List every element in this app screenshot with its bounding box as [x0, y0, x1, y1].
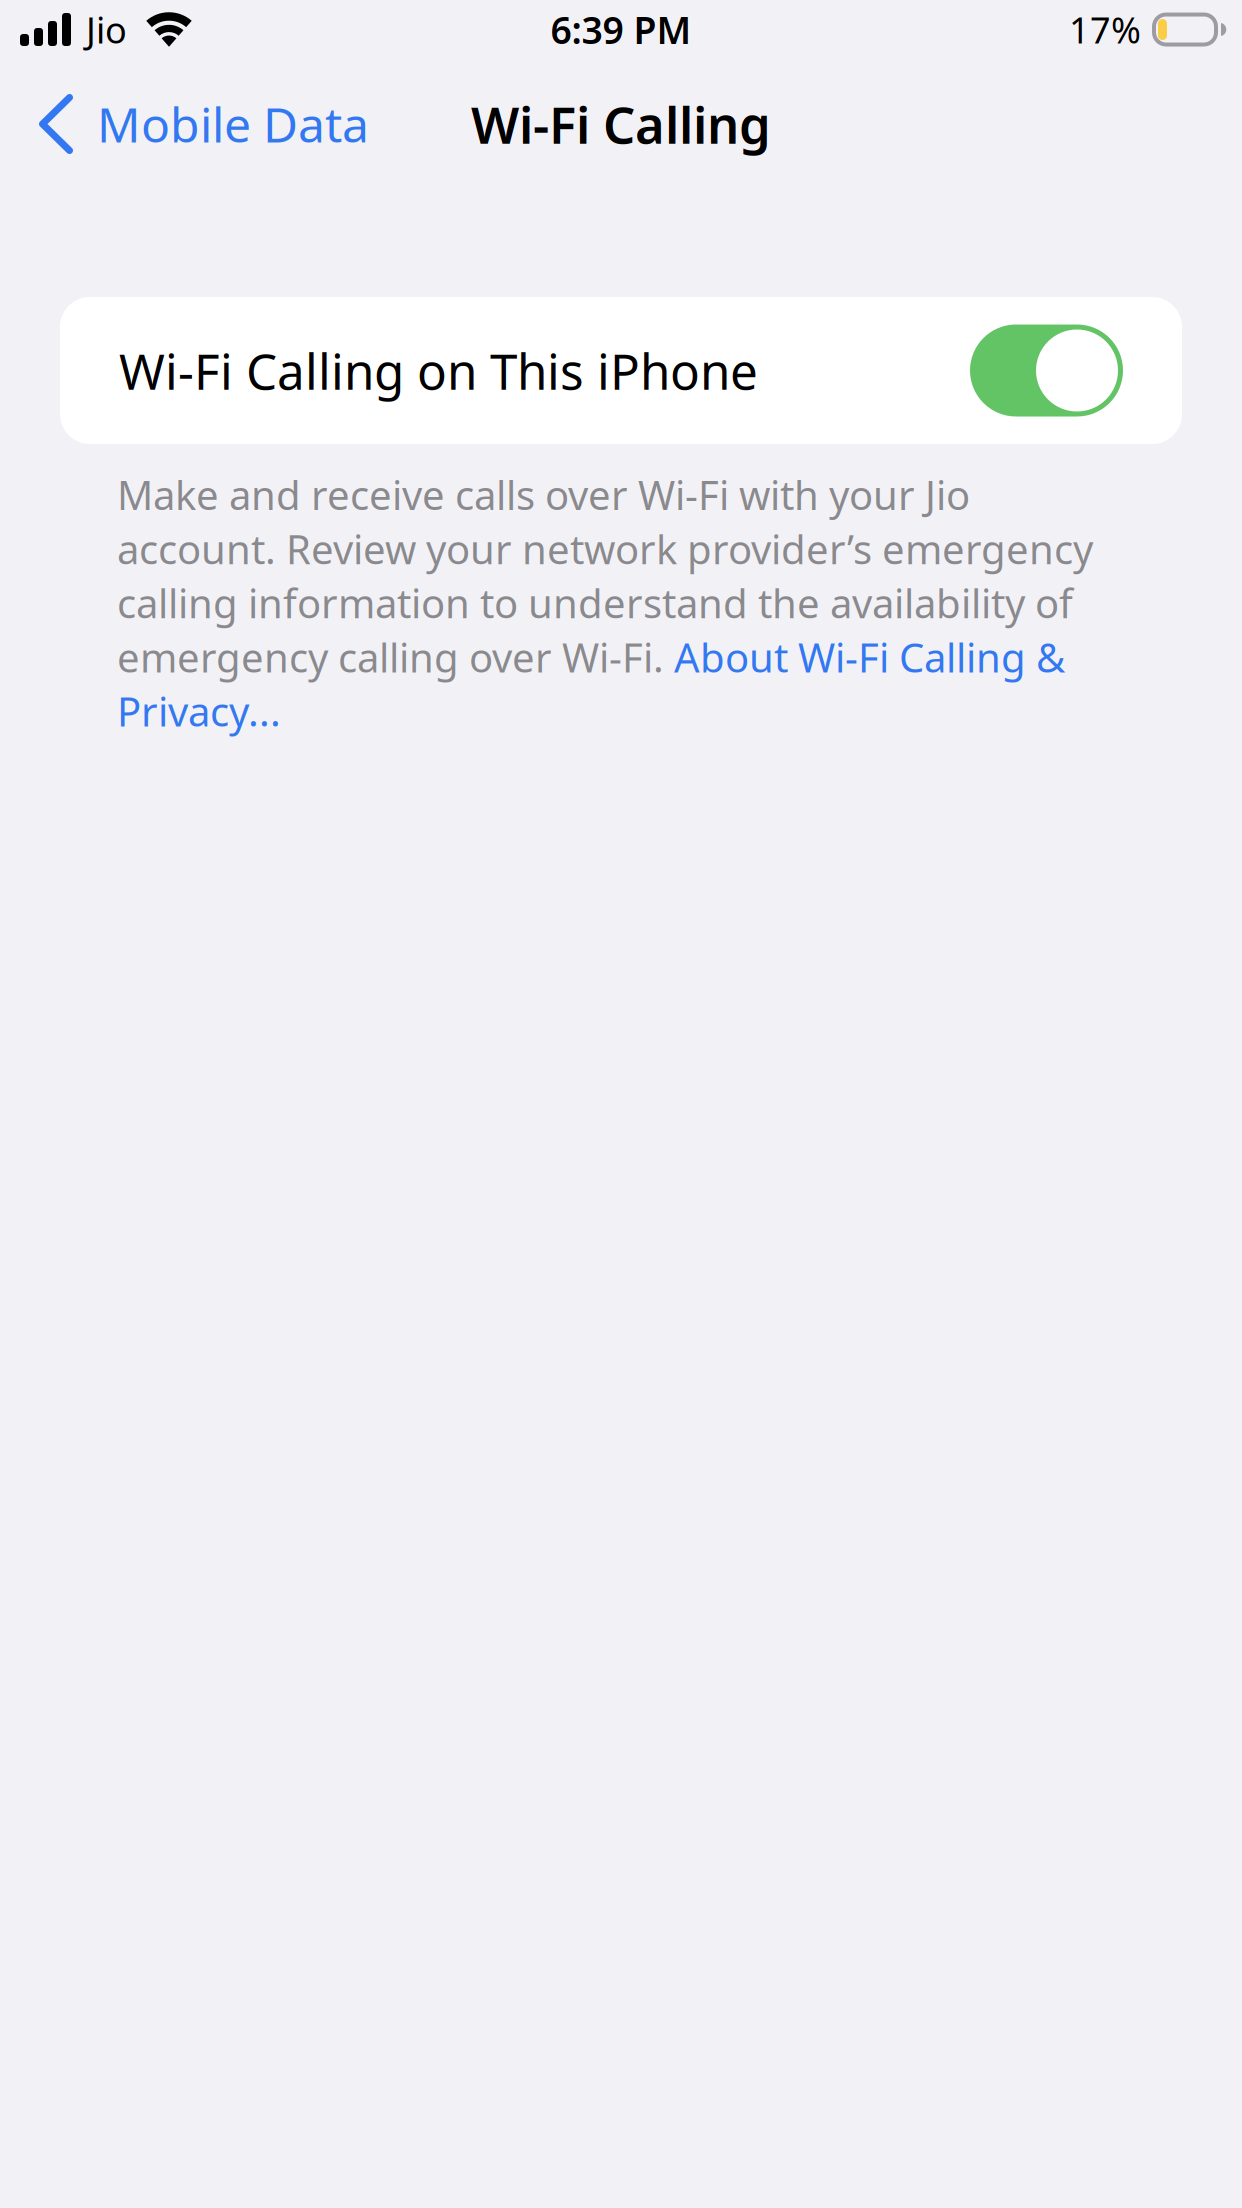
staticText: Make and receive calls over Wi-Fi with y… — [117, 468, 970, 521]
staticText: calling information to understand the av… — [117, 576, 1073, 629]
staticText: Wi-Fi Calling — [471, 90, 771, 158]
staticText: Jio — [86, 6, 127, 53]
staticText: emergency calling over Wi-Fi. — [117, 630, 674, 683]
staticText: 6:39 PM — [550, 5, 691, 54]
staticText: account. Review your network provider’s … — [117, 522, 1093, 575]
button[interactable]: Mobile Data — [0, 76, 393, 172]
staticText: Wi-Fi Calling on This iPhone — [119, 338, 758, 403]
button[interactable]: About Wi-Fi Calling & — [674, 630, 1065, 683]
staticText: Privacy... — [117, 684, 281, 738]
button[interactable]: Wi-Fi Calling on This iPhone — [0, 297, 1242, 444]
staticText: About Wi-Fi Calling & — [674, 630, 1065, 683]
staticText: Mobile Data — [97, 92, 369, 156]
staticText: 17% — [1069, 6, 1141, 53]
button[interactable]: Privacy... — [117, 684, 281, 738]
